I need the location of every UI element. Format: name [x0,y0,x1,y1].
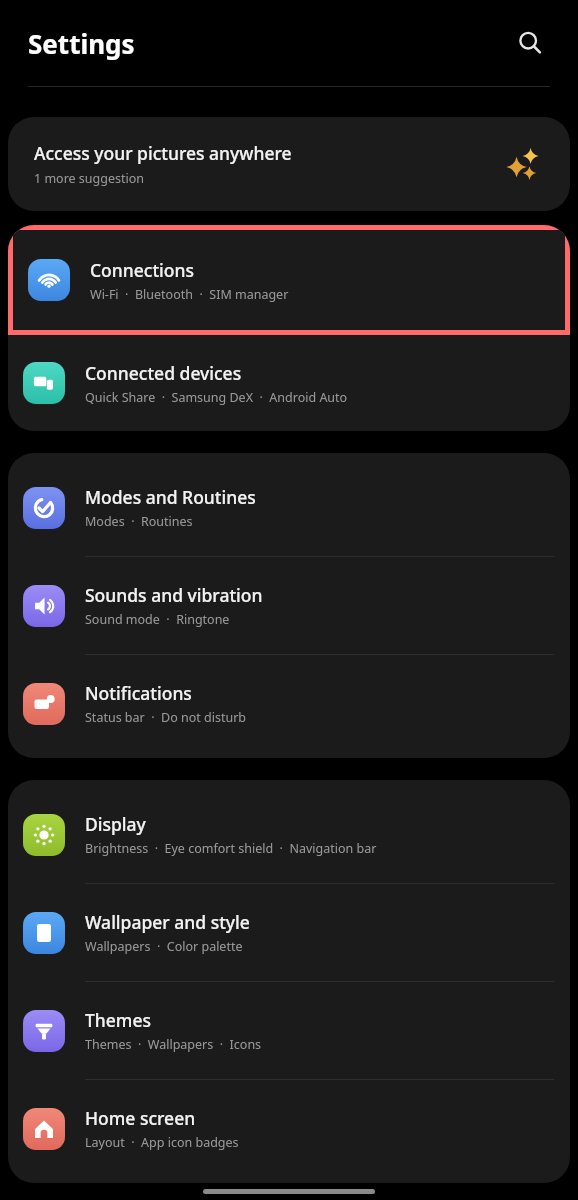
staticText: Notifications [85,681,192,705]
staticText: Home screen [85,1106,196,1130]
staticText: Themes · Wallpapers · Icons [85,1036,262,1053]
button[interactable]: Access your pictures anywhere [8,117,570,211]
button[interactable]: Notifications [8,655,570,752]
button[interactable]: Sounds and vibration [8,557,570,654]
button[interactable]: Modes and Routines [8,459,570,556]
button[interactable]: Themes [8,982,570,1079]
staticText: 1 more suggestion [34,170,145,187]
staticText: Modes and Routines [85,485,256,509]
staticText: Connections [90,258,194,282]
staticText: Sounds and vibration [85,583,263,607]
staticText: Modes · Routines [85,513,193,530]
staticText: Sound mode · Ringtone [85,611,230,628]
staticText: Wi-Fi · Bluetooth · SIM manager [90,286,289,303]
staticText: Settings [28,26,135,61]
button[interactable]: Search [508,21,552,65]
button[interactable]: Connected devices [8,335,570,431]
staticText: Status bar · Do not disturb [85,709,247,726]
staticText: Access your pictures anywhere [34,141,292,165]
staticText: Layout · App icon badges [85,1134,239,1151]
staticText: Themes [85,1008,151,1032]
button[interactable]: Home screen [8,1080,570,1177]
staticText: Quick Share · Samsung DeX · Android Auto [85,389,348,406]
staticText: Display [85,812,146,836]
staticText: Wallpapers · Color palette [85,938,243,955]
button[interactable]: Connections [13,230,565,330]
staticText: Connected devices [85,361,242,385]
staticText: Wallpaper and style [85,910,250,934]
staticText: Brightness · Eye comfort shield · Naviga… [85,840,377,857]
button[interactable]: Wallpaper and style [8,884,570,981]
button[interactable]: Display [8,786,570,883]
